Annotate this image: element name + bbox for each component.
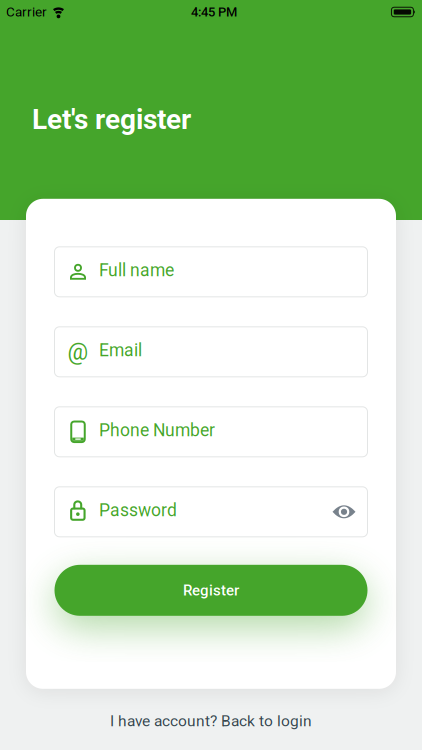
button[interactable]: Phone Number — [54, 407, 367, 457]
button[interactable]: I have account? Back to login — [110, 712, 312, 730]
staticText: Email — [99, 340, 142, 361]
staticText: Full name — [99, 260, 174, 281]
staticText: Let's register — [32, 103, 191, 136]
button[interactable]: Password — [54, 487, 367, 537]
button[interactable] — [332, 504, 356, 519]
staticText: Password — [99, 500, 177, 521]
button[interactable]: Register — [54, 565, 367, 616]
staticText: Register — [183, 581, 239, 599]
staticText: Carrier — [6, 4, 47, 20]
staticText: @ — [67, 338, 88, 365]
button[interactable]: Full name — [54, 247, 367, 297]
staticText: I have account? Back to login — [110, 712, 312, 730]
staticText: 4:45 PM — [191, 4, 237, 20]
button[interactable]: @ — [54, 327, 367, 377]
staticText: Phone Number — [99, 420, 215, 441]
